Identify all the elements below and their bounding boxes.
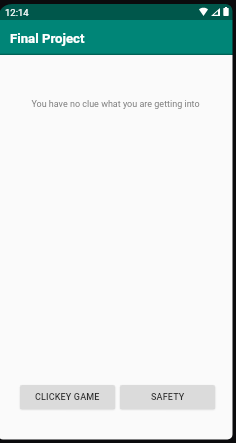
other: Battery: [223, 7, 229, 16]
button[interactable]: CLICKEY GAME: [20, 385, 115, 409]
staticText: Final Project: [10, 31, 85, 46]
other: Wi-Fi: [199, 7, 208, 16]
staticText: SAFETY: [151, 392, 185, 403]
staticText: CLICKEY GAME: [35, 392, 100, 403]
other: Mobile signal: [211, 8, 220, 16]
button[interactable]: SAFETY: [120, 385, 215, 409]
staticText: You have no clue what you are getting in…: [31, 99, 200, 110]
staticText: 12:14: [5, 7, 29, 18]
